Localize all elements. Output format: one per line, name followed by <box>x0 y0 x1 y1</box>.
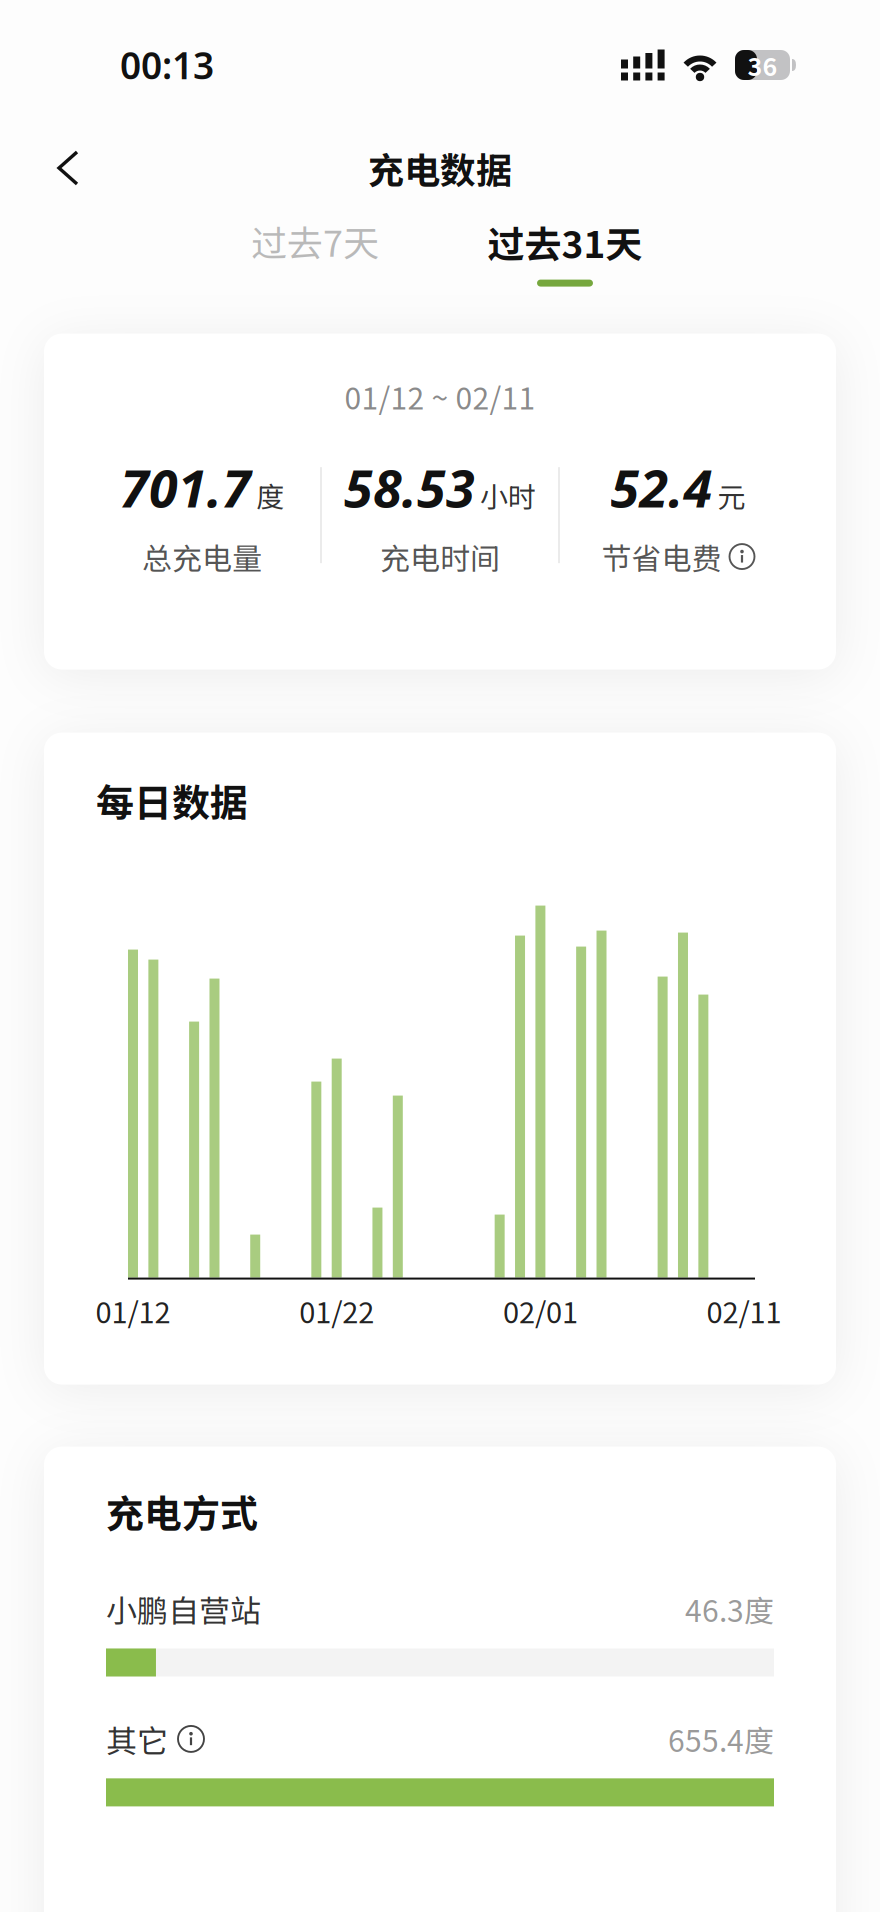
staticText: 01/12 ~ 02/11 <box>344 375 535 418</box>
staticText: 节省电费 <box>601 535 721 578</box>
staticText: 01/12 <box>95 1290 170 1332</box>
staticText: 655.4度 <box>668 1717 774 1761</box>
staticText: 小时 <box>480 475 536 516</box>
staticText: 总充电量 <box>142 535 262 578</box>
button[interactable]: 过去7天 <box>190 215 440 285</box>
staticText: 46.3度 <box>685 1587 774 1631</box>
staticText: 00:13 <box>120 40 214 90</box>
staticText: 其它 <box>106 1716 168 1761</box>
staticText: 36 <box>747 47 777 83</box>
staticText: 充电数据 <box>368 142 512 194</box>
button[interactable]: 节省电费说明 <box>729 544 754 569</box>
staticText: 度 <box>256 475 284 516</box>
staticText: 58.53 <box>344 452 475 523</box>
staticText: 02/11 <box>707 1290 782 1332</box>
staticText: 充电方式 <box>106 1484 258 1539</box>
button[interactable]: 返回 <box>0 150 81 186</box>
staticText: 过去31天 <box>487 215 642 269</box>
staticText: 充电时间 <box>380 535 500 578</box>
staticText: 元 <box>717 475 745 516</box>
staticText: 01/22 <box>299 1290 374 1332</box>
staticText: 过去7天 <box>251 215 379 267</box>
staticText: 02/01 <box>503 1290 578 1332</box>
staticText: 701.7 <box>120 452 251 523</box>
button[interactable]: 其它说明 <box>178 1726 204 1752</box>
button[interactable]: 过去31天 <box>440 215 690 287</box>
staticText: 52.4 <box>610 452 712 523</box>
staticText: 每日数据 <box>96 773 248 828</box>
staticText: 小鹏自营站 <box>106 1587 261 1631</box>
